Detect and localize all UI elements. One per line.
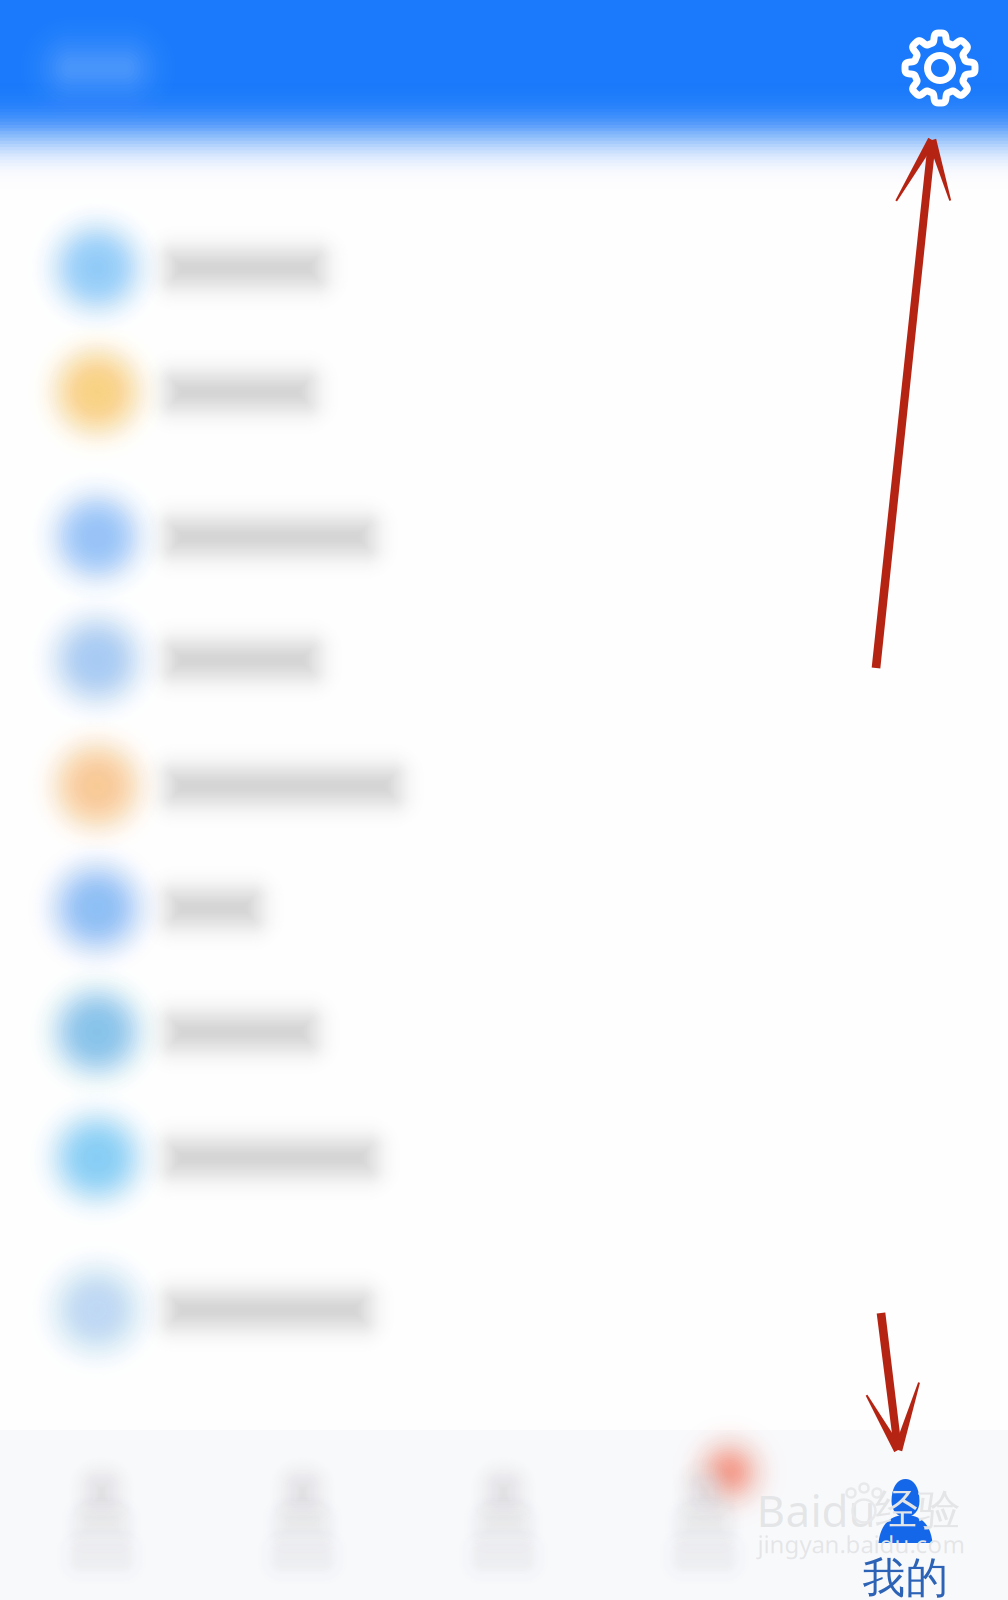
staticText: 我的 — [862, 1552, 948, 1600]
button[interactable] — [604, 1430, 805, 1600]
staticText: Baidu — [756, 1481, 875, 1539]
button[interactable]: Settings — [885, 13, 995, 123]
button[interactable] — [0, 1251, 1008, 1369]
button[interactable] — [0, 849, 1008, 967]
button[interactable] — [202, 1430, 403, 1600]
button[interactable] — [0, 601, 1008, 719]
button[interactable] — [0, 727, 1008, 845]
button[interactable] — [0, 973, 1008, 1091]
button[interactable] — [0, 333, 1008, 451]
staticText: jingyan.baidu.com — [757, 1528, 964, 1560]
button[interactable]: 我的 — [805, 1430, 1006, 1600]
button[interactable] — [0, 1099, 1008, 1217]
button[interactable] — [403, 1430, 604, 1600]
staticText: 经验 — [875, 1484, 961, 1536]
button[interactable] — [0, 478, 1008, 596]
button[interactable] — [1, 1430, 202, 1600]
button[interactable] — [0, 209, 1008, 327]
